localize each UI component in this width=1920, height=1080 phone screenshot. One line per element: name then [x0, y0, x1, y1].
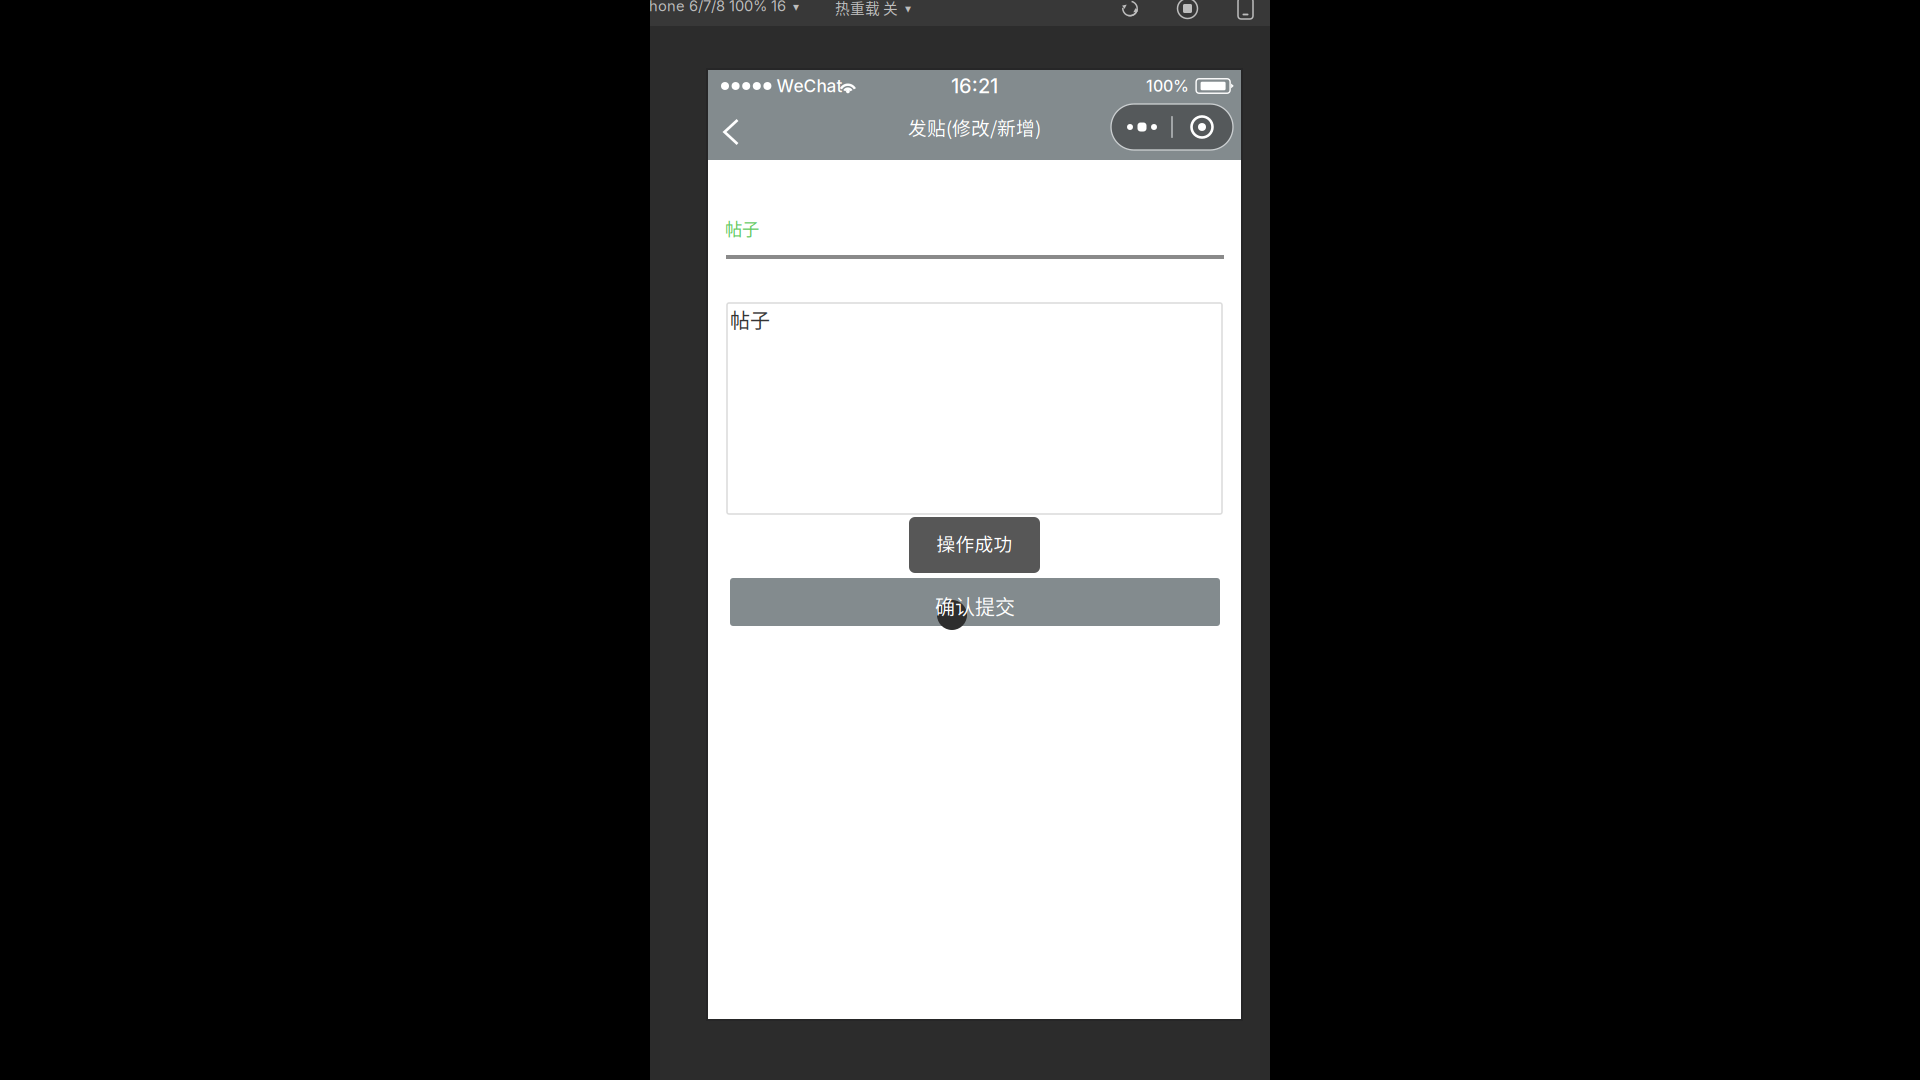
- button[interactable]: Back: [709, 110, 753, 154]
- staticText: 发贴(修改/新增): [908, 113, 1041, 140]
- staticText: hone 6/7/8 100% 16: [649, 0, 786, 15]
- staticText: 确认提交: [935, 591, 1015, 620]
- staticText: WeChat: [776, 75, 842, 96]
- staticText: 100%: [1146, 76, 1189, 96]
- button[interactable]: Refresh: [1120, 0, 1140, 18]
- staticText: 帖子: [725, 215, 759, 241]
- button[interactable]: Device: [1238, 0, 1253, 19]
- staticText: 热重载 关: [835, 0, 898, 18]
- staticText: 帖子: [730, 305, 770, 334]
- button[interactable]: More options: [1111, 104, 1233, 150]
- staticText: 16:21: [951, 74, 998, 98]
- button[interactable]: Stop: [1177, 0, 1198, 19]
- staticText: ▾: [793, 0, 799, 14]
- staticText: ▾: [905, 2, 911, 16]
- staticText: 操作成功: [936, 529, 1012, 556]
- button[interactable]: 确认提交: [730, 578, 1220, 626]
